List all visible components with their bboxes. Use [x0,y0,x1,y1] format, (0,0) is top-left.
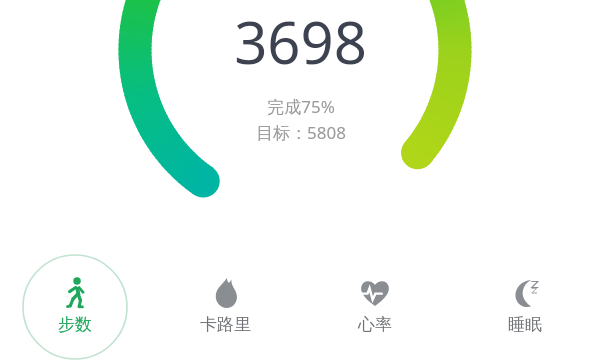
staticText: 卡路里 [200,314,251,335]
staticText: 完成75% [267,95,335,118]
staticText: 步数 [58,314,92,335]
staticText: 目标：5808 [256,121,346,144]
button[interactable]: Heart rate [300,250,450,360]
button[interactable]: Calories [150,250,300,360]
staticText: 心率 [358,314,392,335]
staticText: 睡眠 [508,314,542,335]
button[interactable]: Steps [0,250,150,360]
staticText: 3698 [234,2,367,81]
button[interactable]: Sleep [450,250,600,360]
